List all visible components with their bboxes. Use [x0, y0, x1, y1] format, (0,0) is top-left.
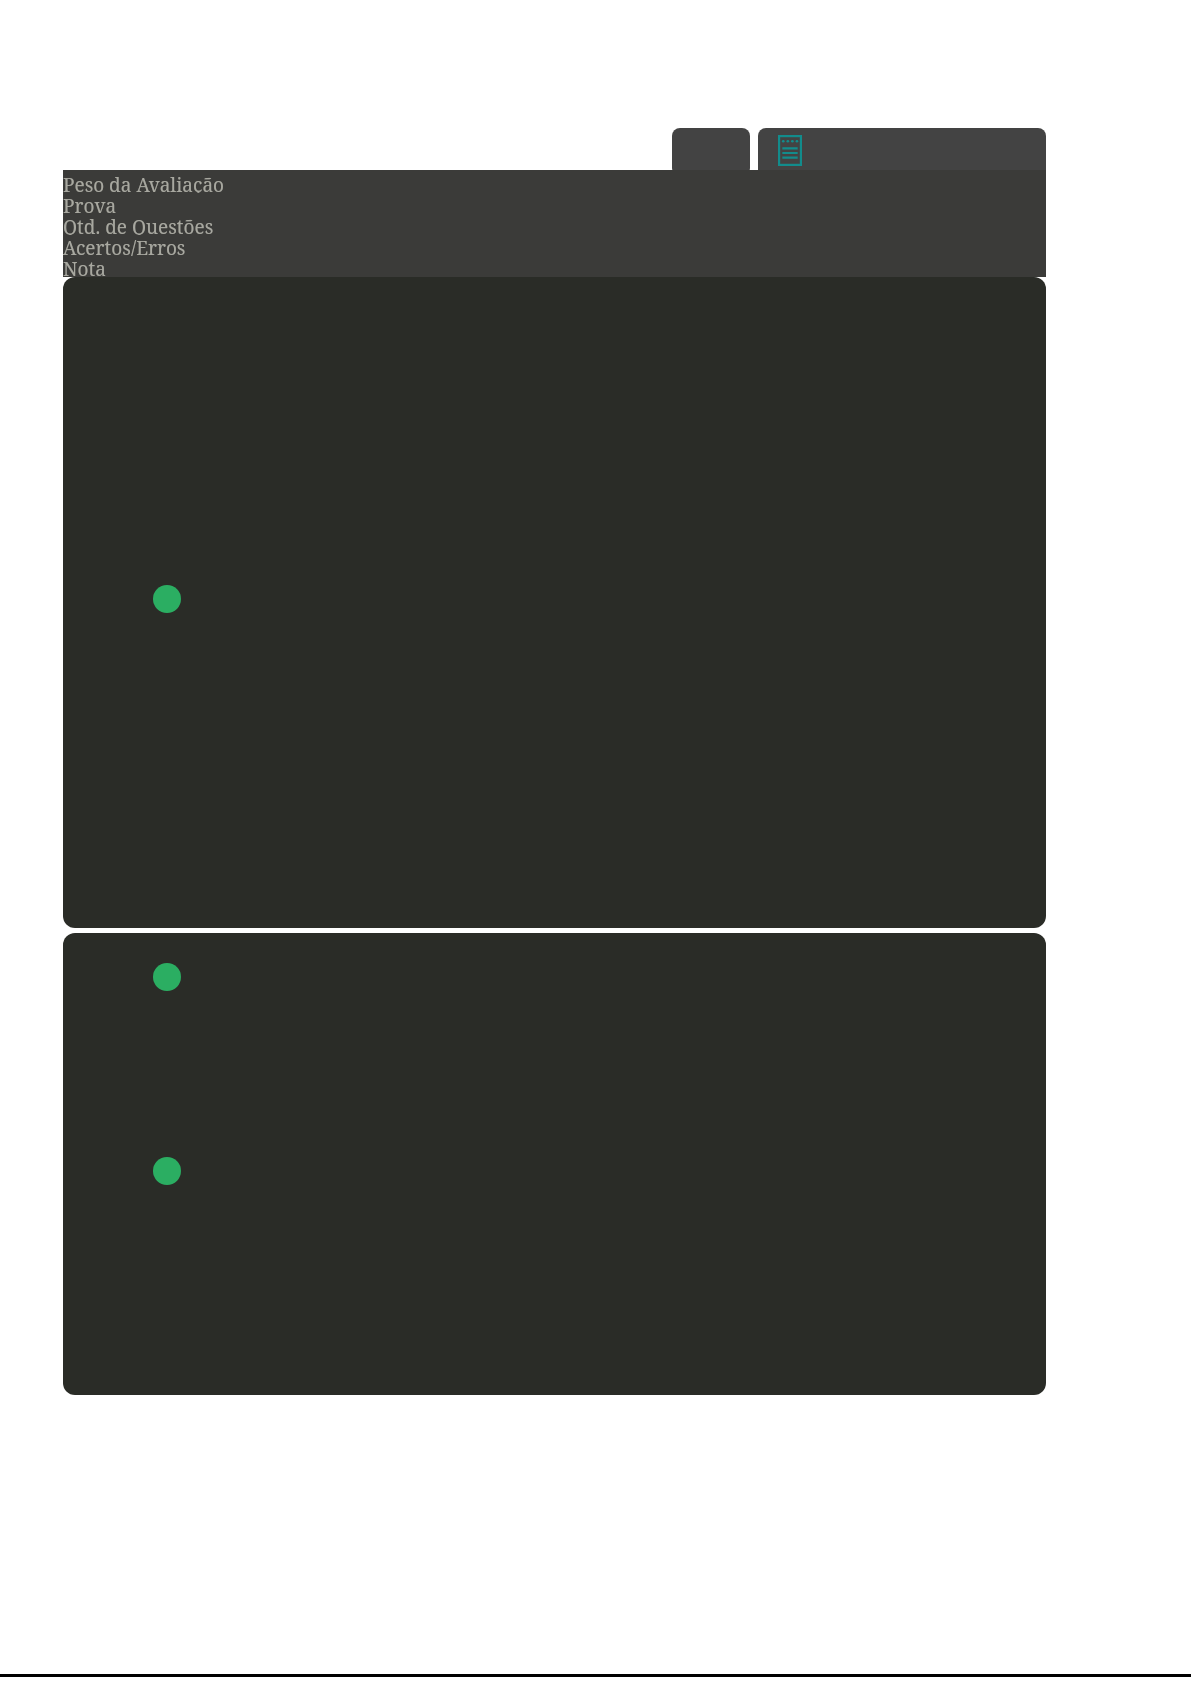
staticText: Nota [63, 256, 106, 277]
button[interactable] [672, 128, 750, 172]
button[interactable] [63, 933, 1046, 1395]
button[interactable]: Avaliações [758, 128, 1046, 172]
staticText: Prova [63, 193, 117, 214]
button[interactable] [63, 277, 1046, 928]
staticText: Peso da Avaliação [63, 172, 225, 193]
staticText: Qtd. de Questões [63, 214, 214, 235]
staticText: Acertos/Erros [63, 235, 186, 256]
